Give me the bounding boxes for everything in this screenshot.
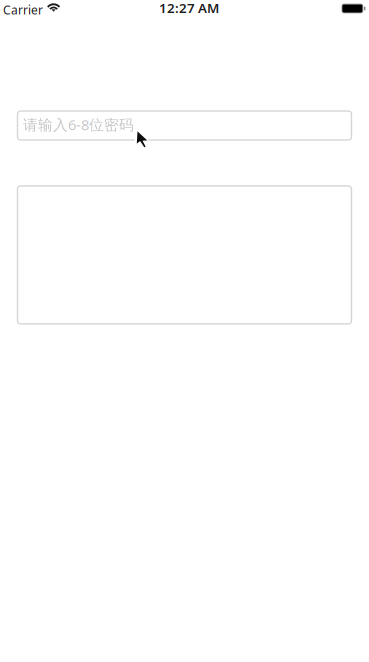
- button[interactable]: 请输入6-8位密码: [17, 111, 351, 140]
- staticText: Carrier: [3, 2, 43, 18]
- staticText: 请输入6-8位密码: [23, 115, 134, 134]
- button[interactable]: Text area: [17, 186, 351, 324]
- staticText: 12:27 AM: [159, 0, 219, 17]
